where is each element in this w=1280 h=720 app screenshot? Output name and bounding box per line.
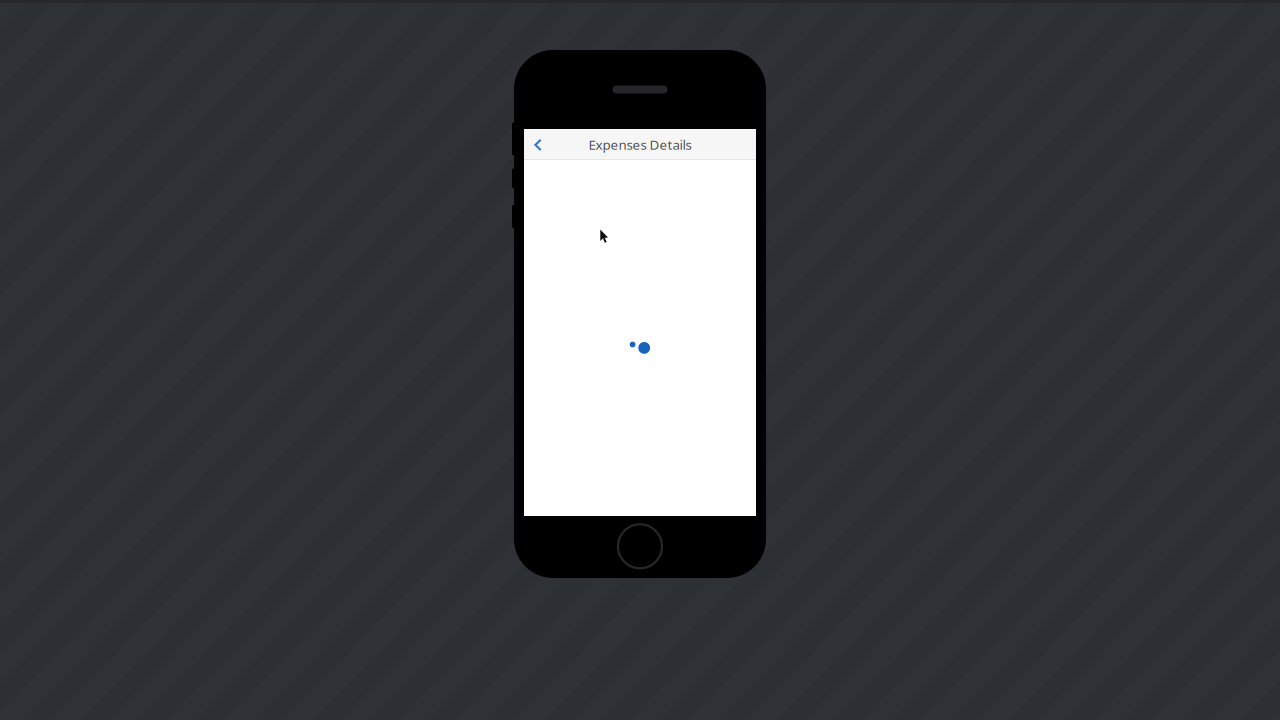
button[interactable]: Back bbox=[524, 129, 552, 160]
staticText: Expenses Details bbox=[588, 136, 691, 153]
